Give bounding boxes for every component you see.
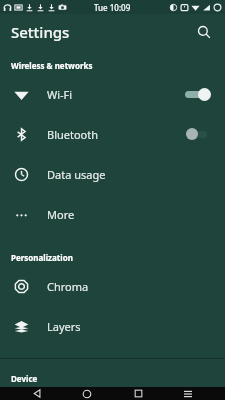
button[interactable]: Home: [74, 387, 100, 400]
staticText: Data usage: [47, 167, 106, 182]
button[interactable]: Layers: [0, 306, 225, 346]
staticText: Settings: [11, 22, 70, 42]
staticText: Wireless & networks: [11, 60, 93, 71]
button[interactable]: Bluetooth: [0, 114, 225, 154]
staticText: Wi-Fi: [47, 87, 73, 102]
button[interactable]: Wi-Fi: [0, 74, 225, 114]
staticText: Tue 10:09: [94, 2, 131, 13]
staticText: Device: [11, 373, 38, 384]
button[interactable]: Back: [24, 387, 50, 400]
button[interactable]: More: [0, 194, 225, 234]
staticText: More: [47, 207, 75, 222]
staticText: Bluetooth: [47, 127, 99, 142]
button[interactable]: Data usage: [0, 154, 225, 194]
button[interactable]: Bluetooth off: [183, 126, 213, 142]
button[interactable]: Chroma: [0, 266, 225, 306]
staticText: Personalization: [11, 252, 73, 263]
staticText: Chroma: [47, 279, 89, 294]
button[interactable]: Search: [191, 19, 217, 45]
staticText: Layers: [47, 319, 81, 334]
button[interactable]: Wi-Fi on: [183, 86, 213, 102]
button[interactable]: Menu: [175, 387, 201, 400]
button[interactable]: Recents: [125, 387, 151, 400]
